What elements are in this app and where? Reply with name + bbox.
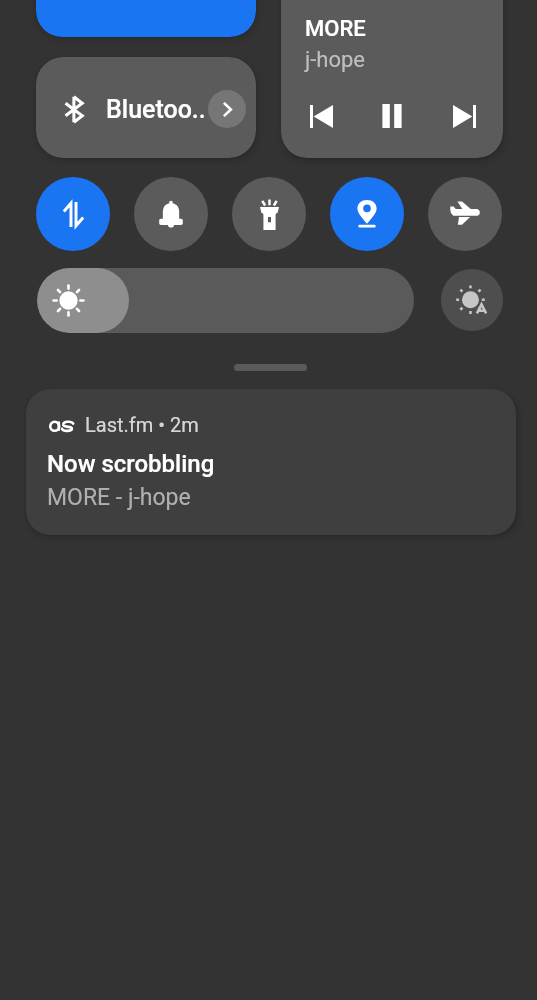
button[interactable]: Last.fm • 2m — [26, 389, 516, 535]
button[interactable]: Next — [440, 92, 488, 140]
button[interactable]: Airplane mode — [428, 177, 502, 251]
button[interactable]: Brightness — [37, 268, 414, 333]
staticText: j-hope — [305, 47, 366, 73]
staticText: Last.fm • 2m — [85, 413, 199, 436]
button[interactable]: Location — [330, 177, 404, 251]
staticText: MORE — [305, 16, 366, 42]
button[interactable]: Pause — [368, 92, 416, 140]
button[interactable]: Bluetoo.. — [36, 57, 256, 158]
button[interactable]: MORE — [281, 0, 503, 158]
button[interactable]: Ringer — [134, 177, 208, 251]
button[interactable]: Auto brightness — [441, 269, 503, 331]
button[interactable]: Mobile data — [36, 177, 110, 251]
staticText: Bluetoo.. — [106, 95, 206, 124]
button[interactable]: Internet — [36, 0, 256, 37]
staticText: MORE - j-hope — [47, 484, 191, 511]
button[interactable]: Flashlight — [232, 177, 306, 251]
button[interactable]: Bluetooth settings — [208, 90, 246, 128]
staticText: Now scrobbling — [47, 450, 215, 478]
button[interactable]: Previous — [297, 92, 345, 140]
